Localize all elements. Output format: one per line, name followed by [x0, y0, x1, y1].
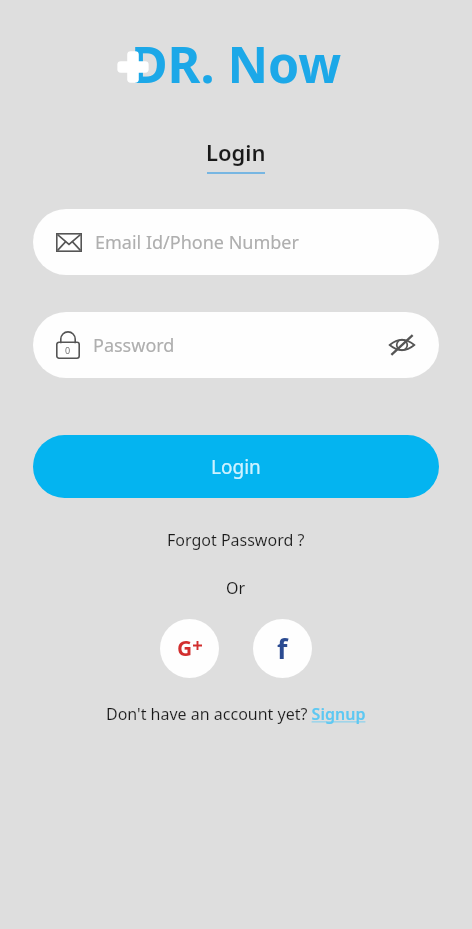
staticText: Password	[93, 333, 175, 358]
button[interactable]: Don't have an account yet? Signup	[106, 703, 366, 725]
button[interactable]: 0	[33, 312, 439, 378]
staticText: Or	[226, 577, 246, 599]
button[interactable]: Email Id/Phone Number	[33, 209, 439, 275]
staticText: DR. Now	[131, 30, 342, 98]
staticText: Login	[206, 137, 266, 167]
staticText: G	[177, 634, 193, 663]
button[interactable]: Forgot Password ?	[167, 529, 305, 551]
staticText: f	[277, 630, 288, 667]
staticText: Login	[211, 454, 261, 480]
button[interactable]: Sign in with Facebook	[253, 619, 312, 678]
button[interactable]: Login	[206, 137, 266, 174]
staticText: 0	[65, 344, 71, 356]
staticText: Email Id/Phone Number	[95, 230, 299, 255]
staticText: Don't have an account yet? Signup	[106, 703, 366, 725]
button[interactable]: Sign in with Google	[160, 619, 219, 678]
staticText: Forgot Password ?	[167, 529, 305, 551]
button[interactable]: Login	[33, 435, 439, 498]
